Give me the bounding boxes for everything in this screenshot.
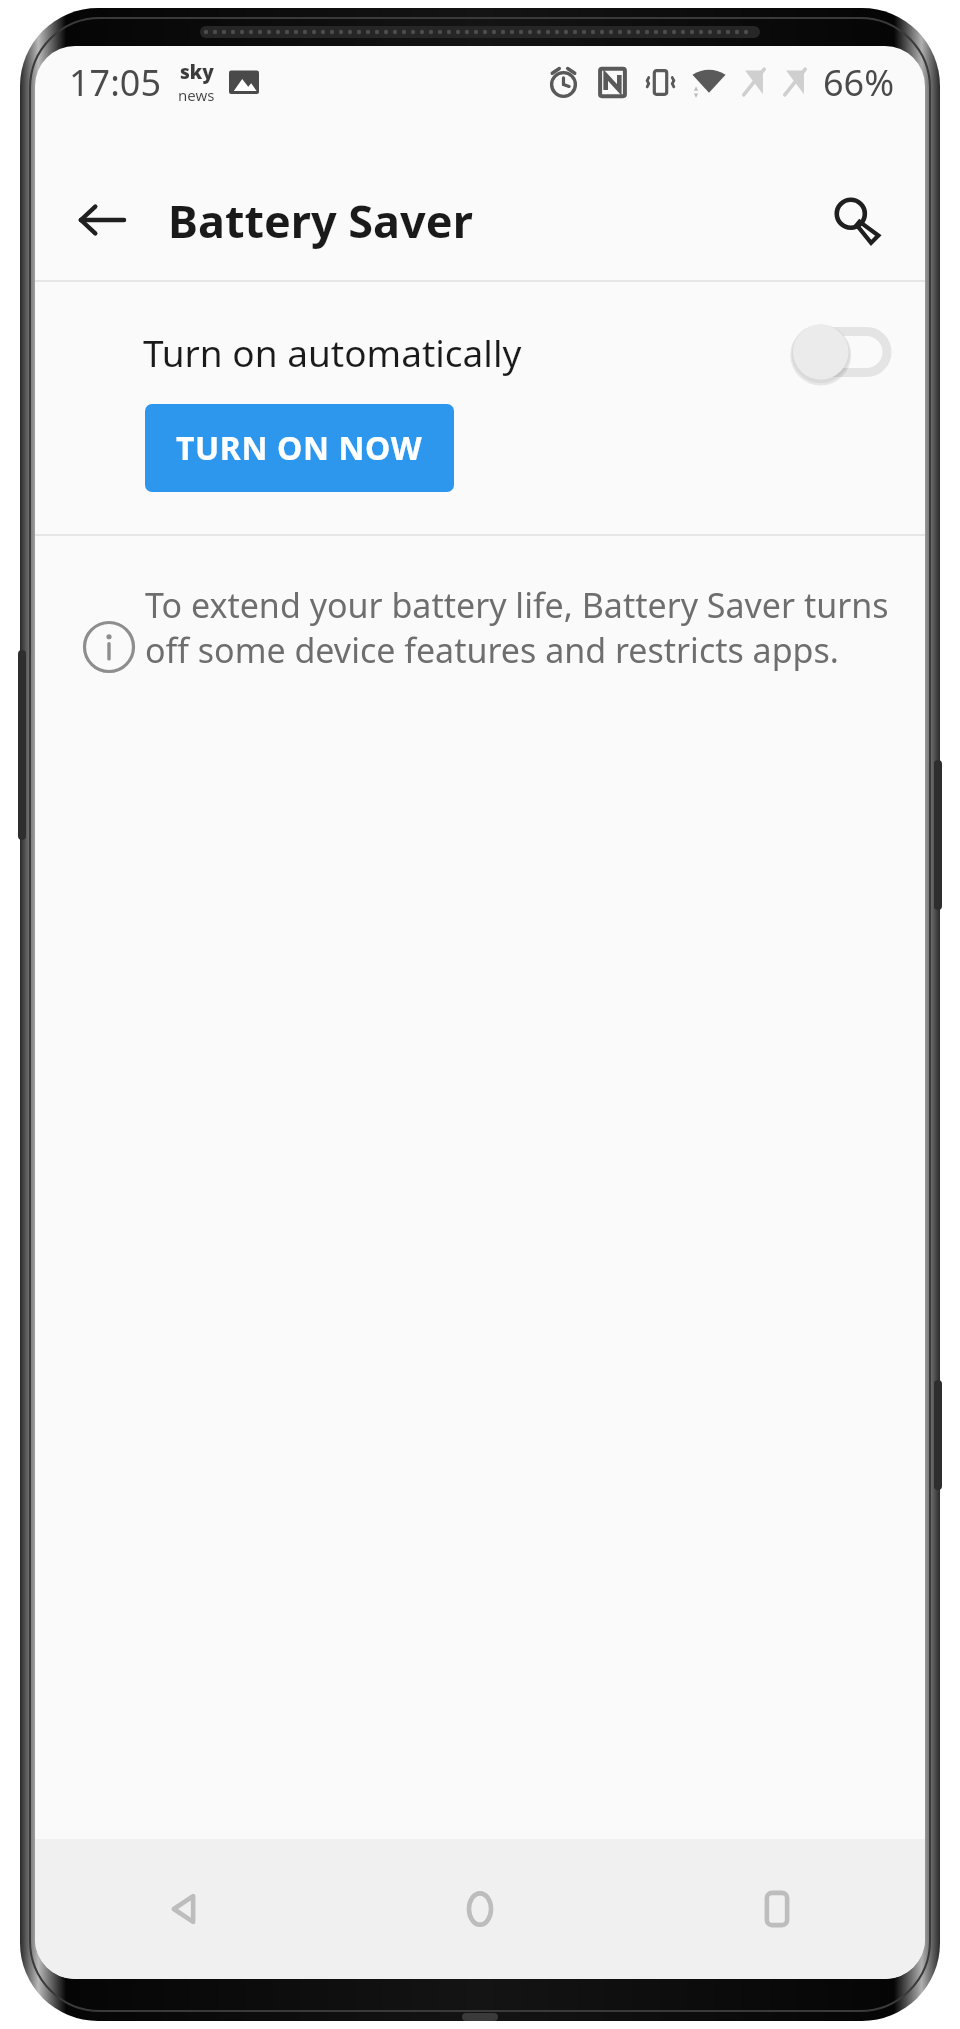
- button[interactable]: Turn on automatically: [35, 306, 925, 398]
- staticText: Turn on automatically: [143, 327, 522, 377]
- button[interactable]: Turn on automatically toggle: [791, 319, 887, 385]
- button[interactable]: Search: [813, 177, 899, 263]
- staticText: news: [178, 85, 215, 105]
- staticText: 66%: [823, 58, 895, 107]
- staticText: 17:05: [69, 58, 162, 107]
- button[interactable]: Back: [59, 177, 145, 263]
- staticText: To extend your battery life, Battery Sav…: [145, 582, 889, 672]
- staticText: TURN ON NOW: [176, 426, 423, 470]
- button[interactable]: TURN ON NOW: [145, 404, 454, 492]
- button[interactable]: Home: [331, 1839, 628, 1979]
- button[interactable]: Recent apps: [628, 1839, 925, 1979]
- staticText: Battery Saver: [168, 190, 473, 251]
- button[interactable]: Back: [35, 1839, 331, 1979]
- staticText: sky: [180, 59, 214, 85]
